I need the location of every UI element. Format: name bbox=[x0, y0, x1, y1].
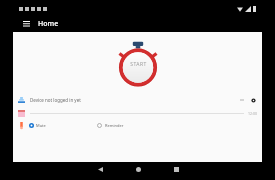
button[interactable]: Start stopwatch bbox=[118, 41, 158, 85]
button[interactable]: Home bbox=[128, 162, 148, 177]
staticText: START bbox=[130, 61, 147, 68]
button[interactable]: Device not logged in yet bbox=[13, 93, 262, 107]
staticText: Home bbox=[38, 19, 59, 29]
button[interactable]: Recent apps bbox=[166, 162, 186, 177]
button[interactable]: Reminder bbox=[97, 119, 177, 132]
staticText: Reminder bbox=[105, 123, 124, 128]
staticText: Mute bbox=[36, 123, 46, 128]
button[interactable]: 12:00 bbox=[13, 107, 262, 119]
button[interactable]: More bbox=[238, 96, 246, 104]
button[interactable]: Back bbox=[90, 162, 110, 177]
button[interactable]: Open navigation menu bbox=[19, 17, 33, 31]
staticText: 12:00 bbox=[248, 111, 257, 116]
staticText: Device not logged in yet bbox=[30, 97, 81, 103]
button[interactable]: Mute bbox=[18, 119, 97, 132]
button[interactable]: Settings bbox=[249, 96, 257, 104]
